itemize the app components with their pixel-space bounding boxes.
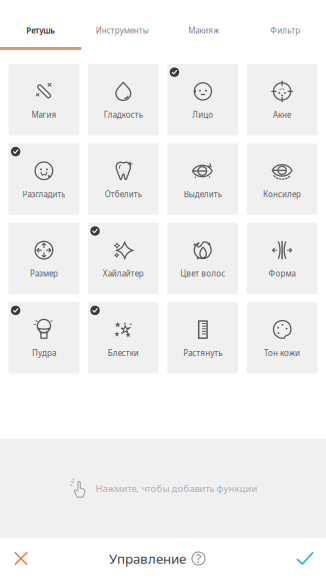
staticText: Размер: [30, 268, 58, 279]
staticText: Разгладить: [22, 189, 65, 199]
button[interactable]: Ретушь: [0, 0, 81, 50]
staticText: Управление: [109, 550, 186, 567]
button[interactable]: Цвет волос: [167, 223, 238, 294]
staticText: Фильтр: [270, 25, 300, 36]
staticText: Нажмите, чтобы добавить функции: [95, 482, 257, 495]
button[interactable]: Выделить: [167, 143, 238, 215]
staticText: Ретушь: [26, 25, 55, 36]
button[interactable]: Блестки: [88, 302, 159, 374]
staticText: ?: [196, 550, 201, 566]
button[interactable]: Отмена: [0, 538, 39, 579]
staticText: Консилер: [263, 189, 301, 199]
button[interactable]: Управление: [109, 538, 205, 579]
staticText: Магия: [31, 109, 56, 120]
staticText: Тон кожи: [264, 348, 300, 358]
button[interactable]: Форма: [247, 223, 318, 294]
staticText: Цвет волос: [180, 268, 225, 279]
button[interactable]: Пудра: [8, 302, 79, 374]
staticText: Гладкость: [104, 109, 143, 120]
staticText: Выделить: [184, 189, 222, 199]
staticText: Отбелить: [105, 189, 142, 199]
button[interactable]: Акне: [247, 64, 318, 135]
button[interactable]: Хайлайтер: [88, 223, 159, 294]
button[interactable]: Фильтр: [244, 0, 326, 50]
button[interactable]: Растянуть: [167, 302, 238, 374]
staticText: Инструменты: [96, 25, 149, 36]
button[interactable]: Нажмите, чтобы добавить функции: [0, 439, 326, 538]
staticText: Пудра: [32, 348, 56, 358]
button[interactable]: Магия: [8, 64, 79, 135]
staticText: Лицо: [192, 109, 213, 120]
button[interactable]: Лицо: [167, 64, 238, 135]
button[interactable]: Инструменты: [81, 0, 163, 50]
button[interactable]: Отбелить: [88, 143, 159, 215]
button[interactable]: Готово: [284, 538, 326, 579]
staticText: Блестки: [108, 348, 139, 358]
button[interactable]: Консилер: [247, 143, 318, 215]
staticText: Акне: [273, 109, 291, 120]
staticText: Хайлайтер: [103, 268, 144, 279]
staticText: Макияж: [188, 25, 219, 36]
button[interactable]: Гладкость: [88, 64, 159, 135]
button[interactable]: Макияж: [163, 0, 244, 50]
button[interactable]: Разгладить: [8, 143, 79, 215]
staticText: Форма: [269, 268, 296, 279]
button[interactable]: Тон кожи: [247, 302, 318, 374]
staticText: Растянуть: [183, 348, 222, 358]
button[interactable]: Размер: [8, 223, 79, 294]
